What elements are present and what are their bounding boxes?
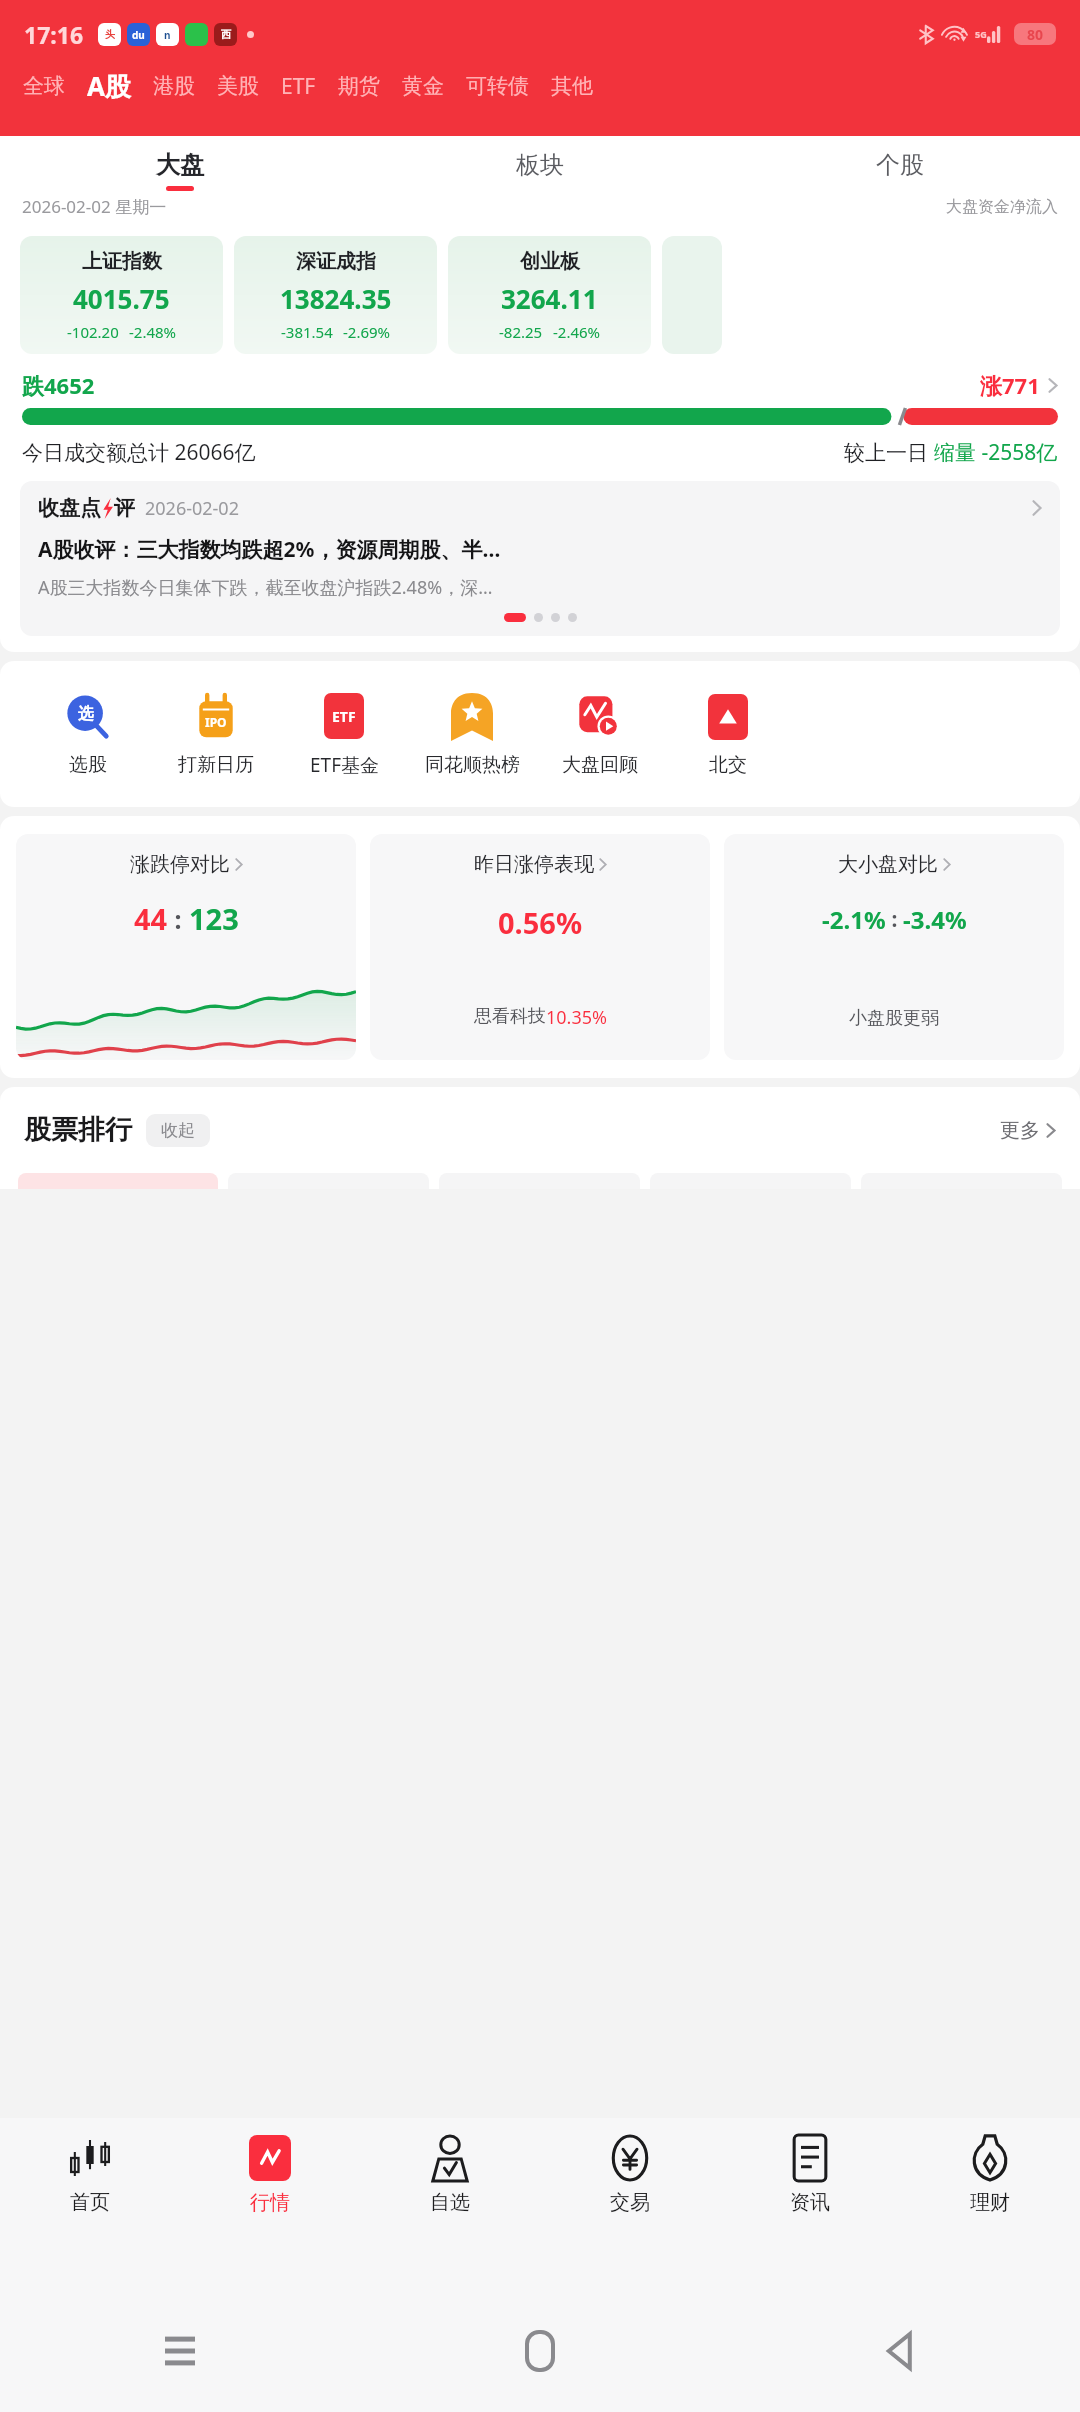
staticText: 昨日涨停表现: [474, 852, 594, 877]
staticText: 13824.35: [280, 281, 392, 316]
staticText: 黄金: [402, 73, 444, 99]
staticText: 涨跌停对比: [130, 852, 230, 877]
button[interactable]: 大盘回顾: [536, 691, 664, 777]
staticText: 更多: [1000, 1118, 1040, 1143]
staticText: 选股: [69, 753, 107, 777]
button[interactable]: ETF: [270, 72, 327, 101]
staticText: 选: [78, 704, 94, 724]
staticText: 西: [221, 28, 231, 41]
button[interactable]: 跌4652: [22, 370, 1058, 467]
staticText: 大盘回顾: [562, 753, 638, 777]
button[interactable]: 大盘: [0, 150, 360, 191]
staticText: 80: [1027, 25, 1044, 44]
staticText: 大盘: [156, 150, 204, 180]
staticText: ETF基金: [310, 752, 379, 778]
button[interactable]: 黄金: [391, 73, 455, 99]
button[interactable]: Back: [720, 2290, 1080, 2412]
button[interactable]: ETF: [280, 690, 408, 778]
button[interactable]: 收起: [146, 1114, 210, 1147]
staticText: -3.4%: [903, 903, 967, 936]
button[interactable]: 昨日涨停表现: [370, 834, 710, 1060]
staticText: 首页: [70, 2190, 110, 2215]
button[interactable]: 板块: [360, 150, 720, 191]
button[interactable]: 可转债: [455, 73, 540, 99]
staticText: 4015.75: [73, 281, 170, 316]
button[interactable]: Recents: [0, 2290, 360, 2412]
button[interactable]: 期货: [327, 73, 391, 99]
staticText: 大盘资金净流入: [946, 197, 1058, 217]
staticText: -2.46%: [553, 322, 601, 342]
staticText: IPO: [205, 714, 227, 730]
staticText: 北交: [709, 753, 747, 777]
staticText: -2.48%: [129, 322, 177, 342]
button[interactable]: 全球: [12, 73, 76, 99]
staticText: du: [132, 28, 145, 42]
button[interactable]: 深证成指: [234, 236, 437, 354]
staticText: 港股: [153, 73, 195, 99]
staticText: -82.25: [499, 322, 543, 342]
staticText: 123: [189, 899, 239, 938]
button[interactable]: 资讯: [720, 2132, 900, 2290]
button[interactable]: 交易: [540, 2132, 720, 2290]
staticText: 期货: [338, 73, 380, 99]
button[interactable]: IPO: [152, 691, 280, 777]
staticText: 头: [105, 28, 115, 41]
button[interactable]: 选: [24, 691, 152, 777]
staticText: 资讯: [790, 2190, 830, 2215]
button[interactable]: 更多: [1000, 1118, 1056, 1143]
staticText: 17:16: [24, 19, 84, 50]
button[interactable]: 涨跌停对比: [16, 834, 356, 1060]
button[interactable]: 收盘点: [20, 481, 1060, 636]
staticText: 3264.11: [501, 281, 598, 316]
staticText: 2026-02-02: [145, 496, 239, 521]
staticText: 小盘股更弱: [849, 1007, 939, 1030]
button[interactable]: A股: [76, 68, 142, 104]
button[interactable]: 港股: [142, 73, 206, 99]
staticText: 自选: [430, 2190, 470, 2215]
staticText: 大小盘对比: [838, 852, 938, 877]
button[interactable]: 首页: [0, 2132, 180, 2290]
staticText: 理财: [970, 2190, 1010, 2215]
staticText: 行情: [250, 2190, 290, 2215]
staticText: 跌4652: [22, 370, 95, 400]
staticText: 可转债: [466, 73, 529, 99]
staticText: 涨771: [980, 370, 1040, 400]
button[interactable]: 北交: [664, 691, 792, 777]
staticText: 交易: [610, 2190, 650, 2215]
button[interactable]: 个股: [720, 150, 1080, 191]
staticText: -2.1%: [822, 903, 886, 936]
staticText: -381.54: [281, 322, 333, 342]
button[interactable]: 理财: [900, 2132, 1080, 2290]
staticText: -2.69%: [343, 322, 391, 342]
staticText: 较上一日: [844, 438, 934, 467]
staticText: :: [886, 905, 903, 934]
staticText: 深证成指: [296, 249, 376, 274]
staticText: 收起: [161, 1120, 195, 1141]
button[interactable]: 行情: [180, 2132, 360, 2290]
button[interactable]: Home: [360, 2290, 720, 2412]
staticText: :: [168, 902, 189, 936]
button[interactable]: 其他: [540, 73, 604, 99]
button[interactable]: 自选: [360, 2132, 540, 2290]
button[interactable]: 同花顺热榜: [408, 691, 536, 777]
other: 行情: [249, 2135, 291, 2181]
staticText: -102.20: [67, 322, 119, 342]
staticText: A股: [87, 68, 131, 104]
button[interactable]: 大小盘对比: [724, 834, 1064, 1060]
button[interactable]: 上证指数: [20, 236, 223, 354]
staticText: 0.56%: [498, 903, 583, 942]
staticText: 收盘点: [38, 495, 101, 521]
button[interactable]: 美股: [206, 73, 270, 99]
button[interactable]: 创业板: [448, 236, 651, 354]
staticText: ETF: [332, 707, 356, 726]
staticText: A股三大指数今日集体下跌，截至收盘沪指跌2.48%，深…: [38, 575, 493, 600]
staticText: 同花顺热榜: [425, 753, 520, 777]
staticText: 10.35%: [546, 1005, 607, 1030]
staticText: 2026-02-02 星期一: [22, 195, 167, 218]
